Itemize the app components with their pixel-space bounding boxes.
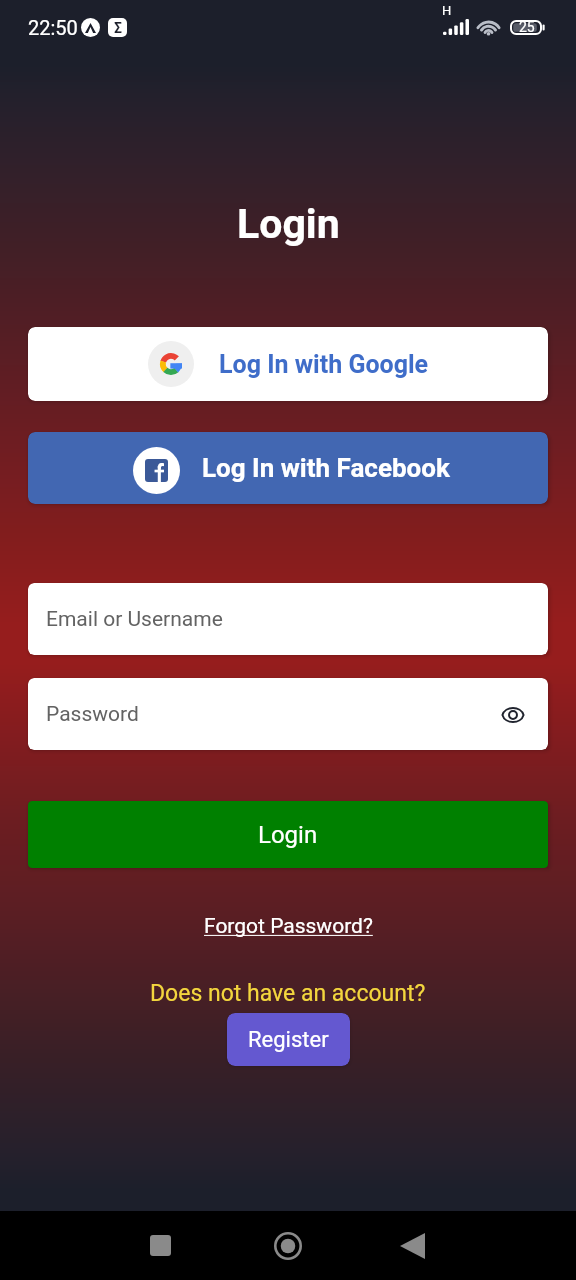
staticText: Login [237,200,340,248]
staticText: Log In with Google [219,350,429,379]
staticText: 25 [519,19,535,35]
button[interactable]: Register [227,1013,350,1066]
button[interactable]: Show password [498,699,528,729]
button[interactable]: Back [376,1211,448,1280]
button[interactable]: Recent apps [124,1211,196,1280]
staticText: Forgot Password? [204,914,373,939]
button[interactable]: Email or Username [28,583,548,655]
button[interactable]: Login [28,801,548,868]
staticText: H [442,3,452,18]
button[interactable]: Forgot Password? [204,914,373,939]
staticText: Password [46,702,139,727]
staticText: Email or Username [46,607,223,632]
button[interactable]: Password [28,678,548,750]
staticText: Does not have an account? [150,980,426,1007]
staticText: Login [258,821,318,849]
staticText: Σ [114,20,122,36]
button[interactable]: Home [252,1211,324,1280]
staticText: Register [248,1027,329,1053]
button[interactable]: Log In with Google [28,327,548,401]
staticText: Log In with Facebook [202,453,450,483]
staticText: 22:50 [28,16,78,39]
button[interactable]: Log In with Facebook [28,432,548,504]
